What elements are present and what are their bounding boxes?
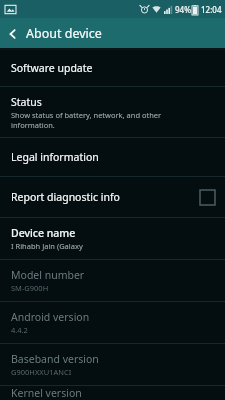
staticText: Software update — [11, 61, 93, 75]
staticText: Show status of battery, network, and oth… — [11, 110, 162, 130]
button[interactable]: Legal information — [0, 138, 225, 176]
staticText: G900HXXU1ANCI — [11, 367, 72, 377]
staticText: 94% — [175, 4, 191, 15]
staticText: Legal information — [11, 150, 99, 164]
button[interactable]: Model number — [0, 260, 225, 301]
button[interactable]: Software update — [0, 50, 225, 86]
staticText: Status — [11, 95, 42, 109]
staticText: Android version — [11, 310, 90, 324]
other: Navigate up — [6, 27, 20, 41]
button[interactable]: Baseband version — [0, 344, 225, 385]
staticText: Model number — [11, 268, 85, 282]
staticText: I Rihabh Jain (Galaxy — [11, 241, 83, 251]
staticText: 4.4.2 — [11, 325, 28, 335]
staticText: 12:04 — [201, 4, 222, 15]
staticText: About device — [26, 25, 102, 42]
button[interactable]: Status — [0, 87, 225, 137]
staticText: Baseband version — [11, 352, 99, 366]
button[interactable]: Android version — [0, 302, 225, 343]
staticText: Report diagnostic info — [11, 190, 200, 204]
button[interactable]: Device name — [0, 218, 225, 259]
staticText: Device name — [11, 226, 76, 240]
button[interactable]: Navigate up — [0, 25, 225, 42]
other: Report diagnostic info checkbox — [200, 190, 215, 205]
button[interactable]: Report diagnostic info — [0, 177, 225, 217]
button[interactable]: Kernel version — [0, 386, 225, 400]
staticText: SM-G900H — [11, 283, 49, 293]
staticText: Kernel version — [11, 386, 82, 400]
other: Screenshot captured — [5, 4, 16, 15]
